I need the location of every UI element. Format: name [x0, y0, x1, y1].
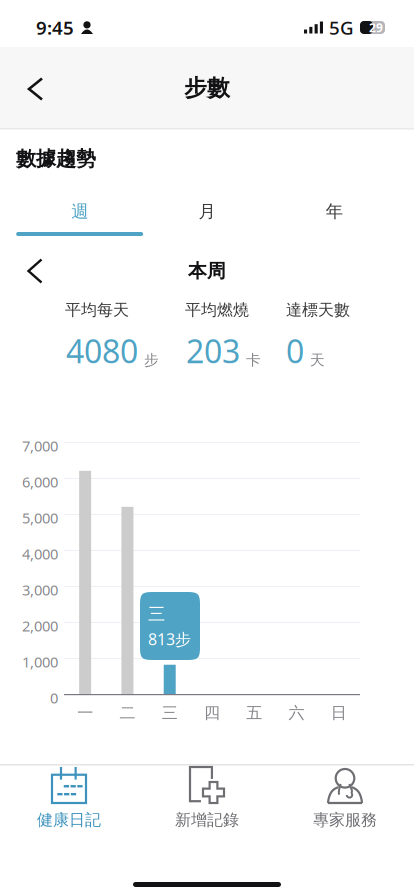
button[interactable]: 月 [143, 171, 271, 242]
button[interactable]: 年 [271, 171, 398, 242]
staticText: 天 [310, 351, 325, 369]
button[interactable]: 週 [16, 171, 143, 242]
button[interactable]: 健康日記 [0, 764, 138, 862]
staticText: 7,000 [22, 436, 58, 455]
staticText: 3,000 [22, 580, 58, 599]
staticText: 卡 [246, 351, 261, 369]
staticText: 三 [148, 603, 165, 625]
staticText: 年 [326, 201, 343, 222]
staticText: 五 [246, 703, 262, 723]
staticText: 步 [144, 351, 159, 369]
staticText: 203 [186, 329, 240, 372]
staticText: 日 [331, 703, 347, 723]
staticText: 步數 [184, 74, 230, 102]
staticText: 六 [289, 703, 305, 723]
button[interactable]: Back [0, 64, 71, 114]
staticText: 0 [286, 329, 304, 372]
staticText: 5G [329, 15, 354, 40]
staticText: 月 [198, 201, 215, 222]
button[interactable]: 新增記錄 [138, 764, 276, 862]
staticText: 5,000 [22, 508, 58, 527]
staticText: 29 [369, 19, 383, 35]
staticText: 0 [50, 688, 58, 707]
staticText: 4,000 [22, 544, 58, 563]
staticText: 本周 [188, 259, 226, 282]
staticText: 平均每天 [65, 300, 129, 320]
staticText: 達標天數 [286, 300, 350, 320]
staticText: 專家服務 [313, 810, 377, 830]
staticText: 6,000 [22, 472, 58, 491]
staticText: 數據趨勢 [16, 146, 96, 171]
staticText: 二 [119, 703, 135, 723]
staticText: 9:45 [36, 15, 74, 40]
staticText: 三 [162, 703, 178, 723]
button[interactable]: Previous week [0, 246, 70, 296]
staticText: 新增記錄 [175, 810, 239, 830]
staticText: 健康日記 [37, 810, 101, 830]
staticText: 一 [77, 703, 93, 723]
staticText: 813步 [148, 628, 191, 650]
staticText: 四 [204, 703, 220, 723]
button[interactable]: 專家服務 [276, 764, 414, 862]
staticText: 平均燃燒 [185, 300, 249, 320]
staticText: 1,000 [22, 652, 58, 671]
staticText: 4080 [66, 329, 138, 372]
staticText: 2,000 [22, 616, 58, 635]
staticText: 週 [71, 201, 88, 222]
